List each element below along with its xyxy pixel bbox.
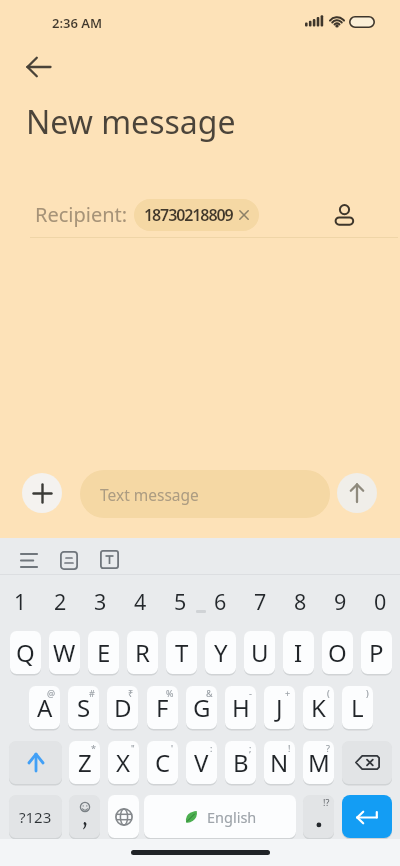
button[interactable]: Text message <box>80 470 330 518</box>
button[interactable]: 0 <box>363 584 397 618</box>
staticText: 0 <box>374 587 387 616</box>
staticText: Text message <box>100 484 199 505</box>
button[interactable]: Y <box>205 631 236 674</box>
staticText: 4 <box>134 587 147 616</box>
button[interactable]: X <box>108 741 139 784</box>
button[interactable]: 5 <box>163 584 197 618</box>
button[interactable]: A <box>29 686 60 729</box>
staticText: J <box>276 691 283 724</box>
staticText: E <box>97 636 111 669</box>
button[interactable] <box>55 546 83 574</box>
button[interactable] <box>22 473 62 513</box>
staticText: @ <box>47 687 56 699</box>
staticText: New message <box>26 100 236 142</box>
button[interactable] <box>22 52 56 82</box>
staticText: 1 <box>14 587 27 616</box>
button[interactable]: B <box>225 741 256 784</box>
staticText: % <box>166 687 174 699</box>
button[interactable] <box>342 795 392 838</box>
staticText: " <box>131 742 135 754</box>
staticText: P <box>369 636 384 669</box>
button[interactable]: Q <box>10 631 41 674</box>
staticText: K <box>311 691 326 724</box>
staticText: F <box>156 691 169 724</box>
staticText: ? <box>326 742 330 754</box>
button[interactable]: E <box>88 631 119 674</box>
staticText: V <box>194 746 209 779</box>
button[interactable]: M <box>303 741 334 784</box>
button[interactable]: P <box>361 631 392 674</box>
staticText: U <box>251 636 269 669</box>
button[interactable]: G <box>186 686 217 729</box>
button[interactable]: K <box>303 686 334 729</box>
button[interactable] <box>9 741 62 784</box>
button[interactable]: R <box>127 631 158 674</box>
staticText: C <box>155 746 171 779</box>
staticText: * <box>91 742 96 754</box>
button[interactable]: !? <box>303 795 334 838</box>
staticText: 9 <box>334 587 347 616</box>
button[interactable] <box>328 200 358 230</box>
button[interactable]: L <box>342 686 373 729</box>
button[interactable]: S <box>68 686 99 729</box>
button[interactable]: T <box>166 631 197 674</box>
staticText: ) <box>366 687 369 699</box>
button[interactable]: 9 <box>323 584 357 618</box>
staticText: ( <box>327 687 330 699</box>
staticText: W <box>53 636 76 669</box>
staticText: : <box>210 742 213 754</box>
button[interactable]: O <box>322 631 353 674</box>
button[interactable]: 6 <box>203 584 237 618</box>
staticText: I <box>294 636 303 669</box>
button[interactable]: C <box>147 741 178 784</box>
staticText: # <box>89 687 95 699</box>
staticText: B <box>233 746 249 779</box>
button[interactable]: Z <box>69 741 100 784</box>
staticText: ?123 <box>19 807 52 827</box>
button[interactable] <box>342 741 392 784</box>
button[interactable]: 3 <box>83 584 117 618</box>
staticText: + <box>285 687 291 699</box>
button[interactable]: 7 <box>243 584 277 618</box>
staticText: 18730218809 <box>144 204 233 226</box>
staticText: Y <box>214 636 228 669</box>
button[interactable] <box>69 795 100 838</box>
button[interactable]: V <box>186 741 217 784</box>
staticText: N <box>270 746 289 779</box>
button[interactable]: 1 <box>3 584 37 618</box>
button[interactable]: I <box>283 631 314 674</box>
staticText: S <box>77 691 91 724</box>
button[interactable]: F <box>147 686 178 729</box>
staticText: 8 <box>294 587 307 616</box>
button[interactable]: 4 <box>123 584 157 618</box>
button[interactable]: W <box>49 631 80 674</box>
button[interactable]: H <box>225 686 256 729</box>
button[interactable]: ?123 <box>9 795 62 838</box>
staticText: English <box>207 807 257 827</box>
staticText: H <box>232 691 250 724</box>
button[interactable]: U <box>244 631 275 674</box>
button[interactable]: N <box>264 741 295 784</box>
staticText: 7 <box>254 587 267 616</box>
button[interactable]: 2 <box>43 584 77 618</box>
staticText: - <box>249 687 252 699</box>
button[interactable]: J <box>264 686 295 729</box>
button[interactable]: English <box>144 795 296 838</box>
staticText: X <box>116 746 131 779</box>
button[interactable]: D <box>107 686 138 729</box>
button[interactable] <box>337 473 377 513</box>
staticText: Z <box>78 746 92 779</box>
staticText: 2 <box>54 587 67 616</box>
staticText: 3 <box>94 587 107 616</box>
staticText: R <box>135 636 150 669</box>
button[interactable] <box>108 795 139 838</box>
button[interactable] <box>95 545 123 573</box>
staticText: G <box>193 691 211 724</box>
staticText: ' <box>171 742 174 754</box>
button[interactable] <box>14 546 44 574</box>
staticText: 5 <box>174 587 187 616</box>
button[interactable]: 18730218809 <box>134 199 259 231</box>
staticText: M <box>308 746 330 779</box>
button[interactable]: 8 <box>283 584 317 618</box>
staticText: T <box>175 636 189 669</box>
